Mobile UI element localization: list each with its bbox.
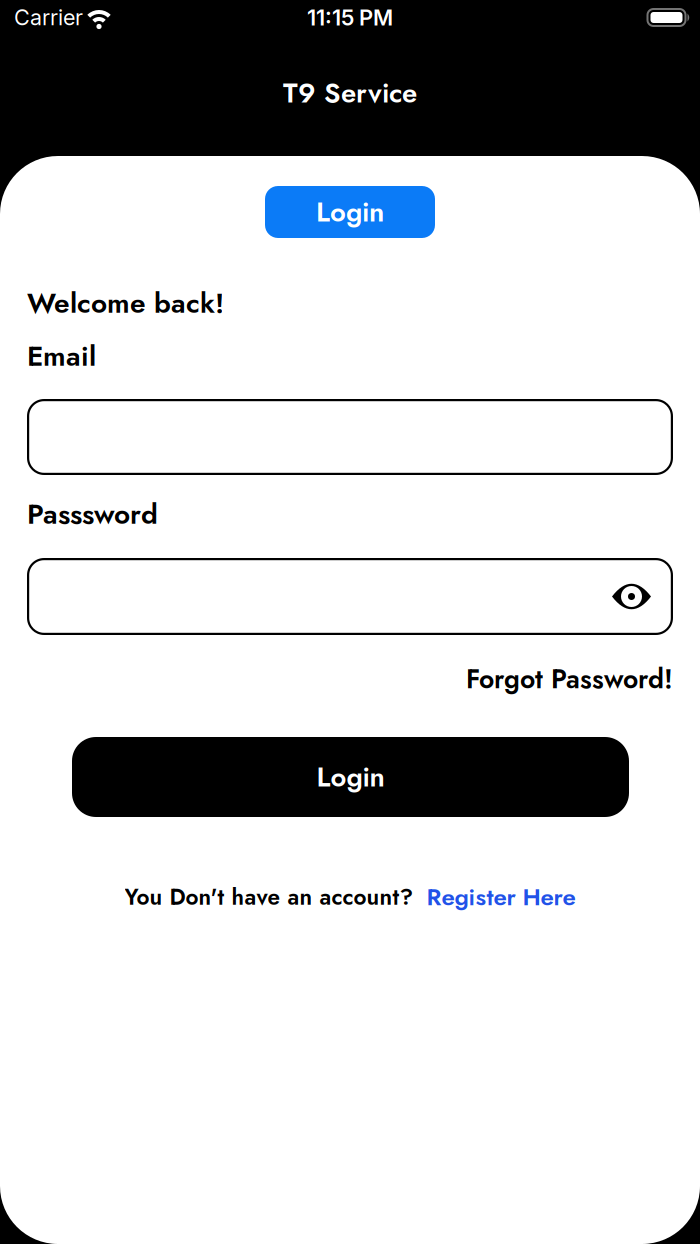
button[interactable]: Forgot Password! [466,662,673,696]
staticText: 11:15 PM [307,4,393,31]
staticText: T9 Service [283,73,417,113]
staticText: Welcome back! [27,283,224,323]
staticText: Login [316,757,384,797]
staticText: You Don't have an account? [124,881,413,913]
staticText: Email [27,336,96,376]
staticText: Register Here [426,880,575,914]
staticText: Login [316,192,384,232]
staticText: Passsword [27,494,158,534]
staticText: Carrier [14,4,83,30]
button[interactable]: Login [265,186,435,238]
button[interactable]: Show password [612,584,651,609]
button[interactable]: Login [72,737,629,817]
button[interactable]: Register Here [426,880,575,914]
staticText: Forgot Password! [466,660,673,698]
